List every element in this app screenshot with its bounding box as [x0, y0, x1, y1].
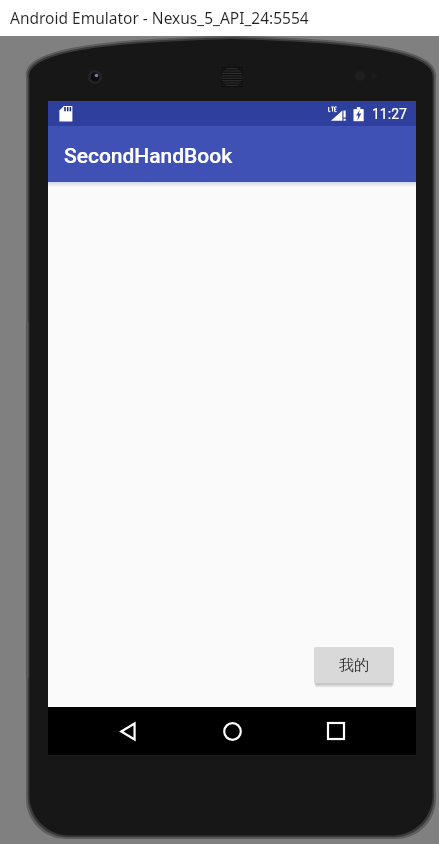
button[interactable]: Recents — [312, 707, 360, 755]
staticText: SecondHandBook — [64, 144, 233, 169]
staticText: 11:27 — [372, 106, 407, 122]
staticText: Android Emulator - Nexus_5_API_24:5554 — [10, 7, 309, 28]
staticText: 我的 — [339, 656, 369, 675]
button[interactable]: Home — [208, 707, 256, 755]
button[interactable]: 我的 — [314, 647, 394, 683]
button[interactable]: Back — [104, 707, 152, 755]
